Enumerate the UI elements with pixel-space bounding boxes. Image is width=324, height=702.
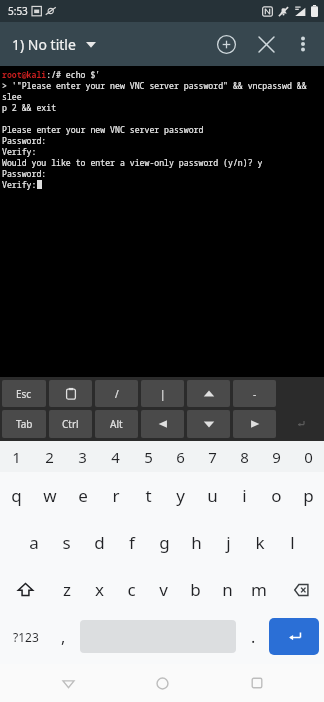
button[interactable]: i <box>228 472 260 519</box>
button[interactable]: h <box>180 519 212 566</box>
staticText: u <box>207 484 218 507</box>
button[interactable]: l <box>276 519 308 566</box>
button[interactable]: New session <box>206 24 246 64</box>
button[interactable]: Home <box>135 664 189 702</box>
button[interactable]: | <box>141 380 184 407</box>
staticText: root@kali:/# echo $' <box>2 69 101 80</box>
button[interactable]: d <box>83 519 116 566</box>
button[interactable]: 0 <box>292 441 324 472</box>
staticText: Would you like to enter a view-only pass… <box>2 157 263 168</box>
staticText: p <box>303 484 314 507</box>
staticText: c <box>127 578 136 601</box>
button[interactable]: Shift <box>0 566 50 613</box>
button[interactable]: Paste <box>49 380 92 407</box>
button[interactable]: s <box>50 519 83 566</box>
button[interactable]: Keyboard <box>279 410 322 438</box>
button[interactable]: Up <box>187 380 230 407</box>
button[interactable]: j <box>212 519 244 566</box>
button[interactable]: Tab <box>2 410 46 438</box>
button[interactable]: 7 <box>196 441 228 472</box>
button[interactable]: g <box>148 519 180 566</box>
button[interactable]: y <box>164 472 196 519</box>
button[interactable]: 6 <box>164 441 196 472</box>
staticText: > '"Please enter your new VNC server pas… <box>2 80 324 102</box>
button[interactable]: e <box>66 472 99 519</box>
button[interactable]: u <box>196 472 228 519</box>
staticText: e <box>78 484 88 507</box>
button[interactable]: ?123 <box>2 617 50 656</box>
staticText: 7 <box>208 447 217 467</box>
button[interactable]: c <box>115 566 147 613</box>
button[interactable]: x <box>83 566 115 613</box>
staticText: / <box>115 387 119 401</box>
button[interactable]: q <box>0 472 33 519</box>
button[interactable]: Enter <box>269 618 319 655</box>
button[interactable]: k <box>244 519 276 566</box>
button[interactable]: 1 <box>0 441 33 472</box>
staticText: w <box>43 484 57 507</box>
button[interactable]: Down <box>187 410 230 438</box>
button[interactable]: f <box>116 519 148 566</box>
button[interactable]: o <box>260 472 292 519</box>
button[interactable]: Back <box>41 664 95 702</box>
staticText: q <box>11 484 22 507</box>
staticText: m <box>251 578 267 601</box>
button[interactable]: 5 <box>132 441 164 472</box>
button[interactable]: p <box>292 472 324 519</box>
staticText: 0 <box>304 447 313 467</box>
staticText: o <box>271 484 282 507</box>
button[interactable]: root@kali:/# echo $' <box>0 66 324 377</box>
button[interactable]: Alt <box>95 410 138 438</box>
staticText: Esc <box>16 387 32 401</box>
button[interactable]: Esc <box>2 380 46 407</box>
button[interactable]: . <box>240 617 266 656</box>
staticText: k <box>255 531 265 554</box>
staticText: Password: <box>2 135 47 146</box>
staticText: 6 <box>176 447 185 467</box>
button[interactable]: / <box>95 380 138 407</box>
button[interactable]: z <box>50 566 83 613</box>
button[interactable]: n <box>211 566 243 613</box>
button[interactable]: Close session <box>246 24 286 64</box>
button[interactable]: Left <box>141 410 184 438</box>
staticText: l <box>290 531 295 554</box>
staticText: x <box>95 578 104 601</box>
button[interactable]: , <box>50 617 76 656</box>
button[interactable]: r <box>99 472 132 519</box>
staticText: Ctrl <box>62 417 79 431</box>
staticText: r <box>112 484 120 507</box>
staticText: t <box>145 484 152 507</box>
button[interactable]: Recents <box>230 664 284 702</box>
button[interactable]: v <box>147 566 179 613</box>
staticText: Verify: <box>2 179 37 190</box>
button[interactable]: Backspace <box>275 566 324 613</box>
button[interactable]: a <box>17 519 50 566</box>
staticText: v <box>159 578 168 601</box>
staticText: a <box>29 531 39 554</box>
button[interactable]: - <box>233 380 276 407</box>
staticText: Alt <box>110 417 123 431</box>
button[interactable]: Right <box>233 410 276 438</box>
button[interactable]: 2 <box>33 441 66 472</box>
button[interactable]: 4 <box>99 441 132 472</box>
button[interactable]: Ctrl <box>49 410 92 438</box>
button[interactable]: 8 <box>228 441 260 472</box>
button[interactable]: t <box>132 472 164 519</box>
staticText: 3 <box>78 447 87 467</box>
staticText: Please enter your new VNC server passwor… <box>2 124 204 135</box>
staticText: f <box>129 531 135 554</box>
staticText: 1 <box>12 447 21 467</box>
button[interactable]: m <box>243 566 275 613</box>
button[interactable]: 1) No title <box>0 29 104 60</box>
staticText: 4 <box>111 447 120 467</box>
staticText: d <box>94 531 105 554</box>
button[interactable]: b <box>179 566 211 613</box>
staticText: , <box>61 626 66 648</box>
button[interactable]: More options <box>286 27 320 61</box>
staticText: 5:53 <box>8 4 28 18</box>
button[interactable]: 9 <box>260 441 292 472</box>
button[interactable]: w <box>33 472 66 519</box>
staticText: j <box>226 531 231 554</box>
button[interactable]: 3 <box>66 441 99 472</box>
